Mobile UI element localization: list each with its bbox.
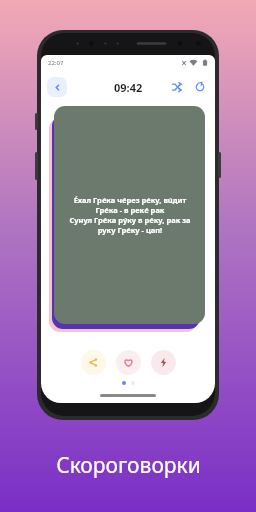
button[interactable]: Shuffle <box>168 78 186 96</box>
button[interactable]: Replay <box>191 78 209 96</box>
button[interactable]: Like <box>116 350 141 375</box>
staticText: Скороговорки <box>56 451 201 480</box>
staticText: Éхал Грéка чéрез рéку, вúдит Грéка - в р… <box>69 195 191 235</box>
button[interactable]: Speed <box>151 350 176 375</box>
button[interactable]: Éхал Грéка чéрез рéку, вúдит Грéка - в р… <box>54 106 205 324</box>
button[interactable]: Back <box>47 77 67 97</box>
button[interactable]: Share <box>81 350 106 375</box>
staticText: 22:07 <box>48 59 64 67</box>
staticText: 09:42 <box>114 80 143 95</box>
